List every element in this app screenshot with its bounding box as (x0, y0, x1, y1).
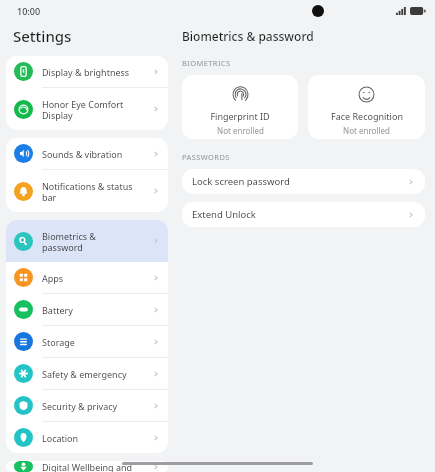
staticText: 10:00 (17, 5, 41, 17)
staticText: Lock screen password (192, 175, 407, 188)
button[interactable]: Sounds & vibration (6, 138, 168, 169)
button[interactable]: Storage (6, 326, 168, 357)
button[interactable]: Location (6, 422, 168, 453)
other: Face Recognition (358, 86, 375, 103)
staticText: Biometrics & password (42, 230, 152, 253)
button[interactable]: Fingerprint ID (182, 75, 298, 139)
button[interactable]: Honor Eye Comfort Display (6, 88, 168, 130)
button[interactable]: Digital Wellbeing and parental controls (6, 461, 168, 472)
staticText: Not enrolled (217, 125, 264, 136)
staticText: Fingerprint ID (210, 110, 270, 122)
staticText: Security & privacy (42, 400, 152, 412)
staticText: Display & brightness (42, 66, 152, 78)
button[interactable]: Lock screen password (182, 169, 425, 194)
staticText: Battery (42, 304, 152, 316)
staticText: Not enrolled (343, 125, 390, 136)
staticText: PASSWORDS (182, 152, 230, 162)
staticText: Apps (42, 272, 152, 284)
button[interactable]: Extend Unlock (182, 202, 425, 227)
button[interactable]: Display & brightness (6, 56, 168, 87)
button[interactable]: Notifications & status bar (6, 170, 168, 212)
button[interactable]: Face Recognition (308, 75, 425, 139)
other: Fingerprint ID (232, 86, 249, 103)
button[interactable]: Biometrics & password (6, 220, 168, 262)
button[interactable]: Safety & emergency (6, 358, 168, 389)
button[interactable]: Battery (6, 294, 168, 325)
staticText: Honor Eye Comfort Display (42, 98, 152, 121)
staticText: BIOMETRICS (182, 58, 231, 68)
staticText: Notifications & status bar (42, 180, 152, 203)
staticText: Biometrics & password (182, 28, 314, 44)
staticText: Extend Unlock (192, 208, 407, 221)
button[interactable]: Apps (6, 262, 168, 293)
staticText: Safety & emergency (42, 368, 152, 380)
staticText: Settings (13, 26, 72, 46)
staticText: Sounds & vibration (42, 148, 152, 160)
staticText: Digital Wellbeing and parental controls (42, 461, 152, 472)
button[interactable]: Security & privacy (6, 390, 168, 421)
staticText: Location (42, 432, 152, 444)
staticText: Storage (42, 336, 152, 348)
staticText: Face Recognition (331, 110, 403, 122)
